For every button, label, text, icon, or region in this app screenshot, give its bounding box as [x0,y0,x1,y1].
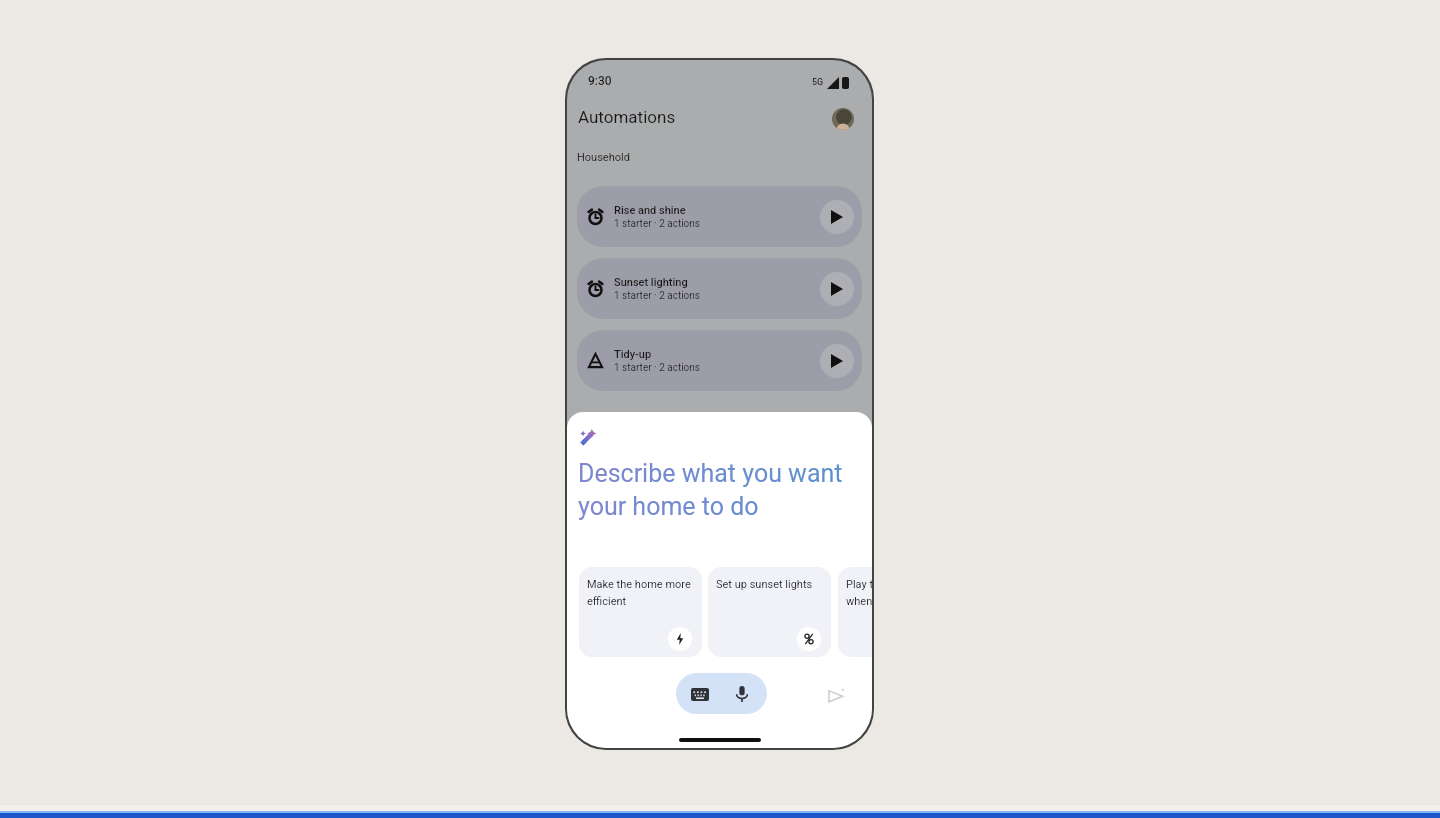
staticText: Rise and shine [614,204,686,217]
button[interactable]: Play the radio when I wake up [838,567,872,657]
staticText: 5G [812,77,824,88]
button[interactable]: Account [832,108,854,130]
staticText: Automations [578,107,676,127]
button[interactable]: Run Rise and shine [820,200,854,234]
button[interactable]: Set up sunset lights [708,567,831,657]
staticText: Household [577,151,630,164]
staticText: Set up sunset lights [716,578,813,591]
staticText: Make the home more efficient [587,578,695,607]
staticText: Play the radio when I wake up [846,578,872,607]
staticText: Describe what you want your home to do [578,459,843,521]
button[interactable]: Run Tidy-up [820,344,854,378]
staticText: Tidy-up [614,348,652,361]
staticText: Sunset lighting [614,276,688,289]
staticText: 1 starter · 2 actions [614,218,701,230]
staticText: 9:30 [588,74,612,88]
button[interactable]: Keyboard and microphone [676,673,767,714]
button[interactable]: Make the home more efficient [579,567,702,657]
button[interactable]: Run Sunset lighting [820,272,854,306]
button[interactable]: Rise and shine [577,186,862,247]
button[interactable]: Sunset lighting [577,258,862,319]
staticText: 1 starter · 2 actions [614,362,701,374]
button[interactable]: Tidy-up [577,330,862,391]
button[interactable]: Send [822,682,850,710]
staticText: 1 starter · 2 actions [614,290,701,302]
